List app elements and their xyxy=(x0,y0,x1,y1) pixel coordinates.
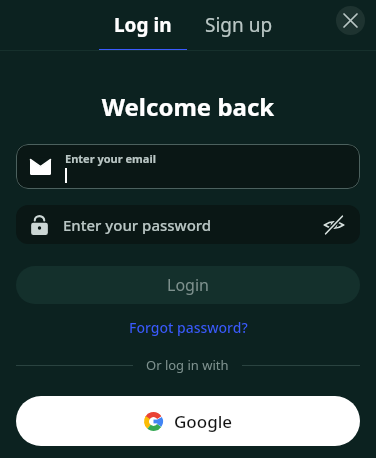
button[interactable]: Show password xyxy=(322,213,346,237)
staticText: Log in xyxy=(114,12,172,38)
staticText: Forgot password? xyxy=(129,318,248,337)
button[interactable]: Log in xyxy=(99,0,187,51)
staticText: Google xyxy=(174,410,233,433)
button[interactable]: Close xyxy=(336,6,365,35)
staticText: Enter your email xyxy=(65,151,156,166)
button[interactable]: Google xyxy=(16,396,360,446)
staticText: Sign up xyxy=(205,12,273,38)
staticText: Enter your password xyxy=(63,215,322,235)
button[interactable]: Forgot password? xyxy=(123,316,254,339)
staticText: Welcome back xyxy=(0,90,376,123)
button[interactable]: Enter your password xyxy=(16,205,360,244)
staticText: Login xyxy=(167,274,209,296)
staticText: Or log in with xyxy=(146,356,229,374)
button[interactable]: Login xyxy=(16,266,360,304)
button[interactable]: Sign up xyxy=(201,0,277,51)
button[interactable]: Enter your email xyxy=(16,144,360,189)
